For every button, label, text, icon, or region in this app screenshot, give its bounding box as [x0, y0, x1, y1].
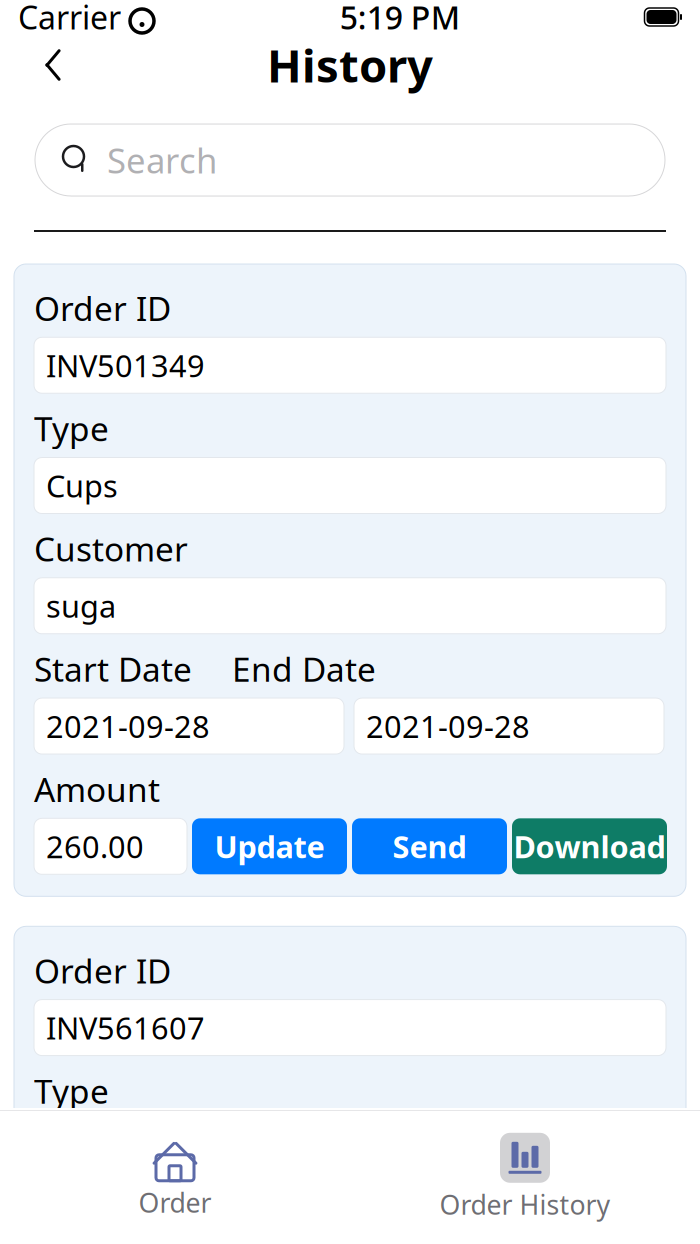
- button[interactable]: Send: [352, 818, 507, 874]
- staticText: History: [267, 35, 433, 95]
- staticText: INV561607: [46, 1007, 205, 1048]
- staticText: Order ID: [34, 286, 171, 330]
- button[interactable]: Back: [26, 41, 80, 89]
- staticText: Order: [138, 1185, 211, 1220]
- staticText: 5:19 PM: [340, 0, 460, 38]
- button[interactable]: Order History: [350, 1111, 700, 1244]
- staticText: Cups: [46, 465, 118, 506]
- staticText: Search: [107, 137, 217, 183]
- staticText: Type: [34, 1069, 109, 1113]
- staticText: End Date: [232, 647, 376, 691]
- staticText: Type: [34, 406, 109, 451]
- staticText: INV501349: [46, 345, 205, 386]
- staticText: Send: [392, 826, 466, 867]
- staticText: Update: [214, 826, 324, 867]
- staticText: 2021-09-28: [46, 706, 210, 746]
- button[interactable]: Search: [35, 124, 665, 196]
- button[interactable]: Update: [192, 818, 347, 874]
- staticText: Amount: [34, 767, 160, 811]
- staticText: Start Date: [34, 647, 192, 691]
- button[interactable]: Download: [512, 818, 667, 874]
- staticText: Download: [513, 826, 665, 867]
- staticText: suga: [46, 585, 116, 626]
- staticText: Carrier: [18, 0, 121, 38]
- staticText: Order ID: [34, 948, 171, 993]
- staticText: 260.00: [46, 826, 144, 867]
- staticText: 2021-09-28: [366, 706, 530, 746]
- staticText: Customer: [34, 526, 188, 571]
- staticText: Order History: [439, 1187, 610, 1222]
- button[interactable]: Order: [0, 1111, 350, 1244]
- staticText: Customer: [34, 1189, 188, 1233]
